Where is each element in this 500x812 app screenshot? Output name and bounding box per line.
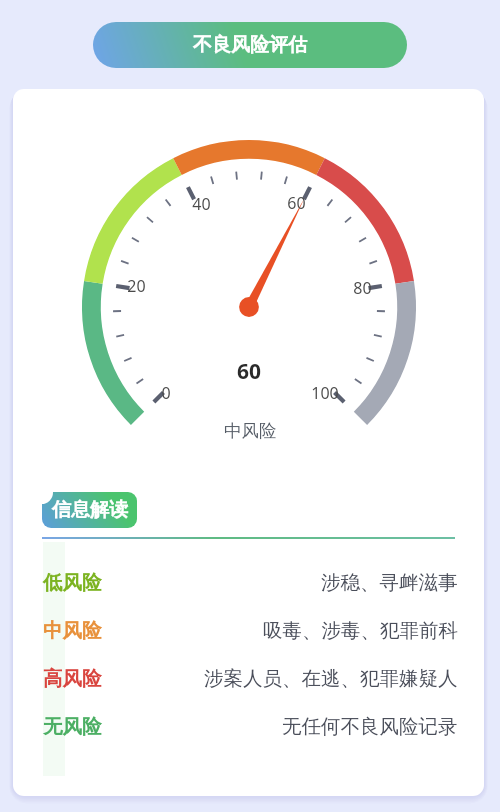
staticText: 中风险 xyxy=(43,618,102,643)
button[interactable]: 低风险 xyxy=(43,558,458,606)
staticText: 20 xyxy=(127,275,146,297)
staticText: 无任何不良风险记录 xyxy=(282,714,458,739)
button[interactable]: 中风险 xyxy=(43,606,458,654)
staticText: 60 xyxy=(287,192,306,214)
staticText: 无风险 xyxy=(43,714,102,739)
staticText: 涉稳、寻衅滋事 xyxy=(321,570,458,595)
staticText: 40 xyxy=(192,193,211,215)
button[interactable]: 不良风险评估 xyxy=(93,22,407,68)
staticText: 中风险 xyxy=(224,420,277,442)
button[interactable]: 高风险 xyxy=(43,654,458,702)
staticText: 高风险 xyxy=(43,666,102,691)
staticText: 100 xyxy=(311,382,339,404)
staticText: 不良风险评估 xyxy=(193,33,307,57)
button[interactable]: 信息解读 xyxy=(42,492,137,528)
staticText: 0 xyxy=(161,382,171,404)
staticText: 低风险 xyxy=(43,570,102,595)
staticText: 信息解读 xyxy=(52,498,128,522)
staticText: 80 xyxy=(353,277,372,299)
staticText: 60 xyxy=(237,357,262,386)
button[interactable]: 无风险 xyxy=(43,702,458,750)
staticText: 涉案人员、在逃、犯罪嫌疑人 xyxy=(204,666,458,691)
staticText: 吸毒、涉毒、犯罪前科 xyxy=(263,618,458,643)
